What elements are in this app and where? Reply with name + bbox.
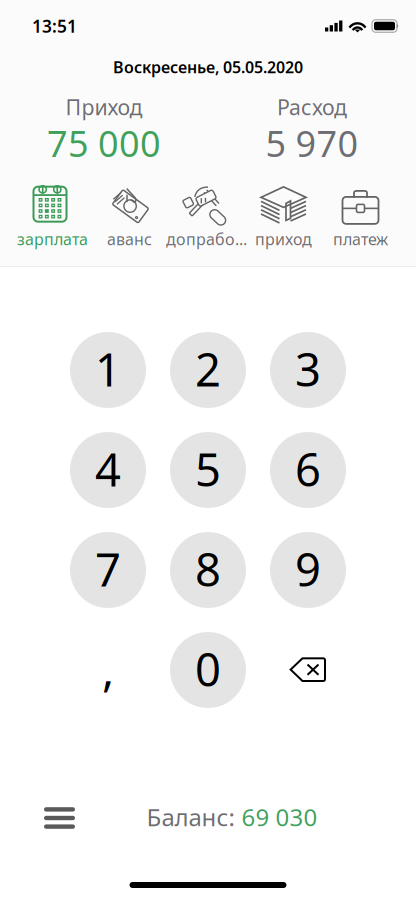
button[interactable]: 9 [270, 532, 346, 608]
staticText: зарплата [17, 228, 88, 250]
staticText: 6 [295, 439, 321, 499]
staticText: 3 [295, 339, 321, 399]
button[interactable]: Баланс: [117, 797, 347, 837]
button[interactable]: 2 [170, 332, 246, 408]
button[interactable]: аванс [91, 184, 168, 250]
staticText: платеж [333, 228, 388, 250]
button[interactable]: Decimal separator [70, 632, 146, 708]
button[interactable]: платеж [322, 184, 399, 250]
button[interactable]: 6 [270, 432, 346, 508]
staticText: Баланс: [146, 801, 234, 833]
button[interactable]: 7 [70, 532, 146, 608]
staticText: приход [255, 228, 312, 250]
staticText: 8 [195, 539, 221, 599]
button[interactable]: приход [245, 184, 322, 250]
button[interactable]: 0 [170, 632, 246, 708]
staticText: 9 [295, 539, 321, 599]
staticText: 5 [195, 439, 221, 499]
button[interactable]: допрабо... [168, 184, 245, 250]
staticText: Расход [277, 93, 347, 121]
staticText: 75 000 [47, 119, 161, 167]
staticText: Приход [65, 93, 142, 121]
button[interactable]: 4 [70, 432, 146, 508]
staticText: 1 [95, 339, 121, 399]
button[interactable]: 8 [170, 532, 246, 608]
button[interactable]: зарплата [14, 184, 91, 250]
button[interactable]: 1 [70, 332, 146, 408]
staticText: 4 [95, 439, 121, 499]
button[interactable]: Menu [29, 794, 90, 842]
staticText: 0 [195, 639, 221, 699]
button[interactable]: 5 [170, 432, 246, 508]
staticText: аванс [107, 228, 152, 250]
staticText: 69 030 [241, 801, 317, 833]
staticText: , [102, 639, 114, 699]
button[interactable]: Delete [270, 632, 346, 708]
staticText: допрабо... [166, 228, 247, 250]
staticText: 2 [195, 339, 221, 399]
staticText: 5 970 [265, 119, 358, 167]
staticText: 7 [95, 539, 121, 599]
button[interactable]: 3 [270, 332, 346, 408]
staticText: 13:51 [32, 14, 77, 37]
staticText: Воскресенье, 05.05.2020 [113, 56, 303, 78]
